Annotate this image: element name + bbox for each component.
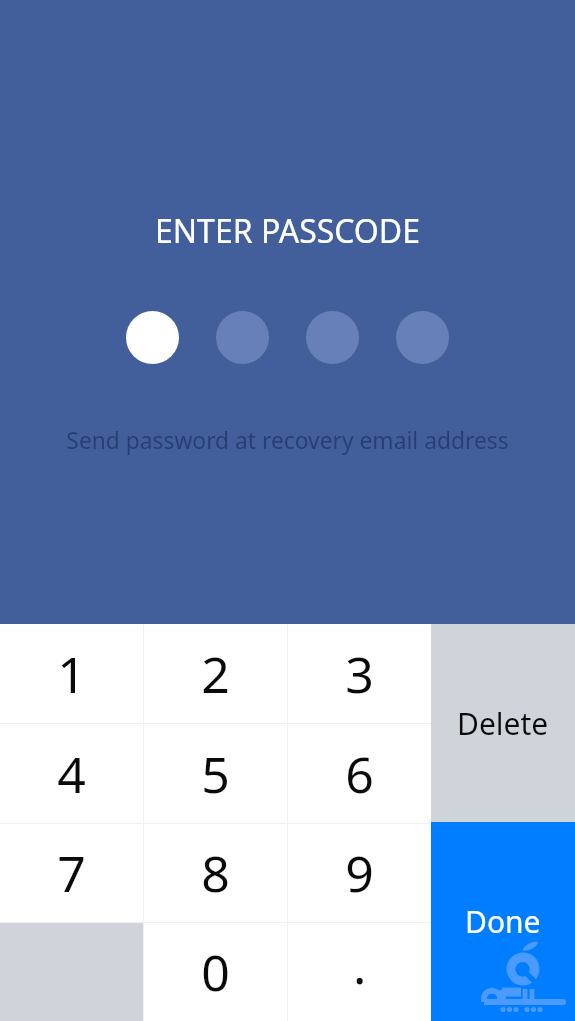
button[interactable]: Done [431, 822, 575, 1021]
button[interactable]: 3 [288, 624, 431, 723]
button[interactable]: 7 [0, 824, 143, 922]
button[interactable]: 0 [144, 923, 287, 1021]
button[interactable]: 8 [144, 824, 287, 922]
button[interactable]: 9 [288, 824, 431, 922]
button[interactable]: 2 [144, 624, 287, 723]
staticText: 6 [345, 740, 374, 808]
staticText: 9 [345, 839, 374, 907]
staticText: 5 [201, 740, 230, 808]
staticText: 3 [345, 640, 374, 708]
staticText: 4 [57, 740, 86, 808]
button[interactable]: Delete [431, 624, 575, 822]
staticText: ENTER PASSCODE [155, 209, 420, 253]
button[interactable]: Send password at recovery email address [56, 419, 519, 462]
staticText: 0 [201, 938, 230, 1006]
button[interactable]: 6 [288, 724, 431, 823]
staticText: 2 [201, 640, 230, 708]
button[interactable]: 1 [0, 624, 143, 723]
button[interactable]: 4 [0, 724, 143, 823]
button[interactable]: 5 [144, 724, 287, 823]
staticText: Send password at recovery email address [66, 425, 509, 456]
staticText: Done [465, 901, 541, 942]
staticText: . [353, 931, 367, 999]
staticText: 1 [57, 640, 86, 708]
staticText: 7 [57, 839, 86, 907]
staticText: Delete [457, 703, 549, 744]
button[interactable]: . [288, 923, 431, 1021]
staticText: 8 [201, 839, 230, 907]
